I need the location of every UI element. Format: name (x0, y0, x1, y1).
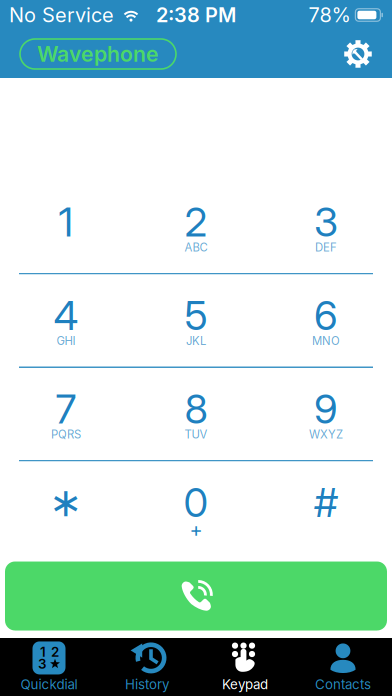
button[interactable]: 2 (131, 181, 261, 273)
staticText: Wavephone (37, 41, 159, 67)
staticText: 1 (58, 198, 73, 246)
button[interactable]: Keypad (196, 638, 294, 696)
staticText: DEF (315, 241, 337, 254)
button[interactable]: Call (5, 561, 387, 630)
staticText: 8 (184, 385, 207, 433)
button[interactable]: ∗ (1, 461, 131, 553)
button[interactable]: 8 (131, 368, 261, 460)
staticText: 1 (40, 644, 46, 660)
staticText: # (314, 478, 338, 527)
staticText: 7 (55, 385, 76, 433)
staticText: TUV (184, 428, 207, 441)
staticText: 78% (308, 3, 350, 27)
staticText: GHI (56, 334, 75, 348)
staticText: MNO (312, 334, 340, 348)
staticText: No Service (9, 3, 114, 27)
button[interactable]: Settings (344, 40, 372, 68)
staticText: Contacts (315, 676, 371, 692)
staticText: History (125, 676, 169, 692)
button[interactable]: 5 (131, 274, 261, 366)
staticText: Quickdial (20, 676, 77, 692)
button[interactable]: 0 (131, 461, 261, 553)
staticText: 3 (38, 656, 46, 672)
staticText: 2 (51, 644, 59, 660)
staticText: 4 (53, 291, 78, 340)
staticText: 2:38 PM (156, 3, 236, 27)
staticText: 6 (314, 291, 338, 340)
button[interactable]: 7 (1, 368, 131, 460)
staticText: 3 (314, 198, 338, 246)
staticText: ABC (184, 241, 207, 254)
staticText: WXYZ (309, 428, 343, 441)
button[interactable]: History (98, 638, 196, 696)
button[interactable]: 1 (1, 181, 131, 273)
staticText: Keypad (222, 676, 268, 692)
staticText: ∗ (49, 479, 83, 526)
staticText: JKL (186, 334, 206, 348)
button[interactable]: 1 (0, 638, 98, 696)
button[interactable]: 9 (261, 368, 391, 460)
staticText: 9 (314, 385, 338, 433)
staticText: PQRS (51, 428, 81, 441)
button[interactable]: Wavephone (20, 39, 176, 69)
button[interactable]: 6 (261, 274, 391, 366)
button[interactable]: Contacts (294, 638, 392, 696)
staticText: + (189, 518, 202, 542)
button[interactable]: 4 (1, 274, 131, 366)
button[interactable]: 3 (261, 181, 391, 273)
staticText: 2 (184, 198, 207, 246)
button[interactable]: # (261, 461, 391, 553)
staticText: 0 (183, 478, 208, 527)
staticText: 5 (184, 291, 207, 340)
